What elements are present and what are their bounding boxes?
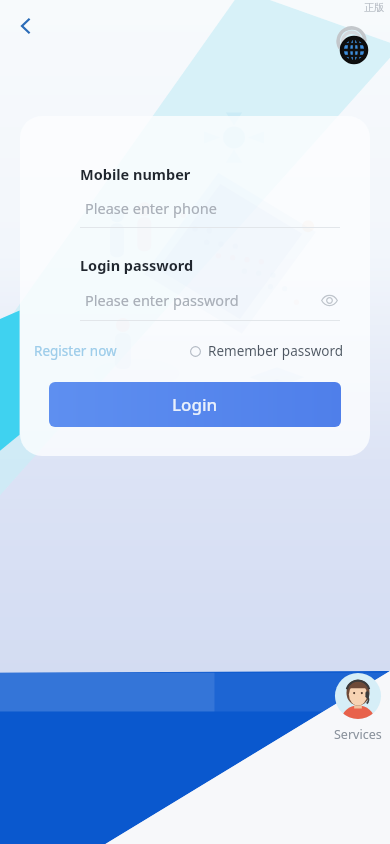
button[interactable]: Services	[332, 672, 384, 743]
staticText: 正版	[364, 1, 384, 14]
staticText: Mobile number	[80, 164, 191, 184]
staticText: Login password	[80, 255, 194, 275]
button[interactable]: Back	[4, 4, 48, 48]
button[interactable]: Login	[49, 382, 341, 427]
staticText: Register now	[34, 342, 117, 360]
staticText: Services	[334, 726, 382, 743]
button[interactable]: Language	[330, 26, 378, 74]
button[interactable]: Remember password	[188, 340, 346, 362]
button[interactable]: Show password	[318, 289, 340, 311]
staticText: Login	[172, 393, 218, 416]
staticText: Please enter password	[85, 290, 239, 310]
staticText: Please enter phone	[85, 198, 217, 218]
staticText: Remember password	[208, 342, 344, 360]
button[interactable]: Register now	[32, 340, 119, 362]
